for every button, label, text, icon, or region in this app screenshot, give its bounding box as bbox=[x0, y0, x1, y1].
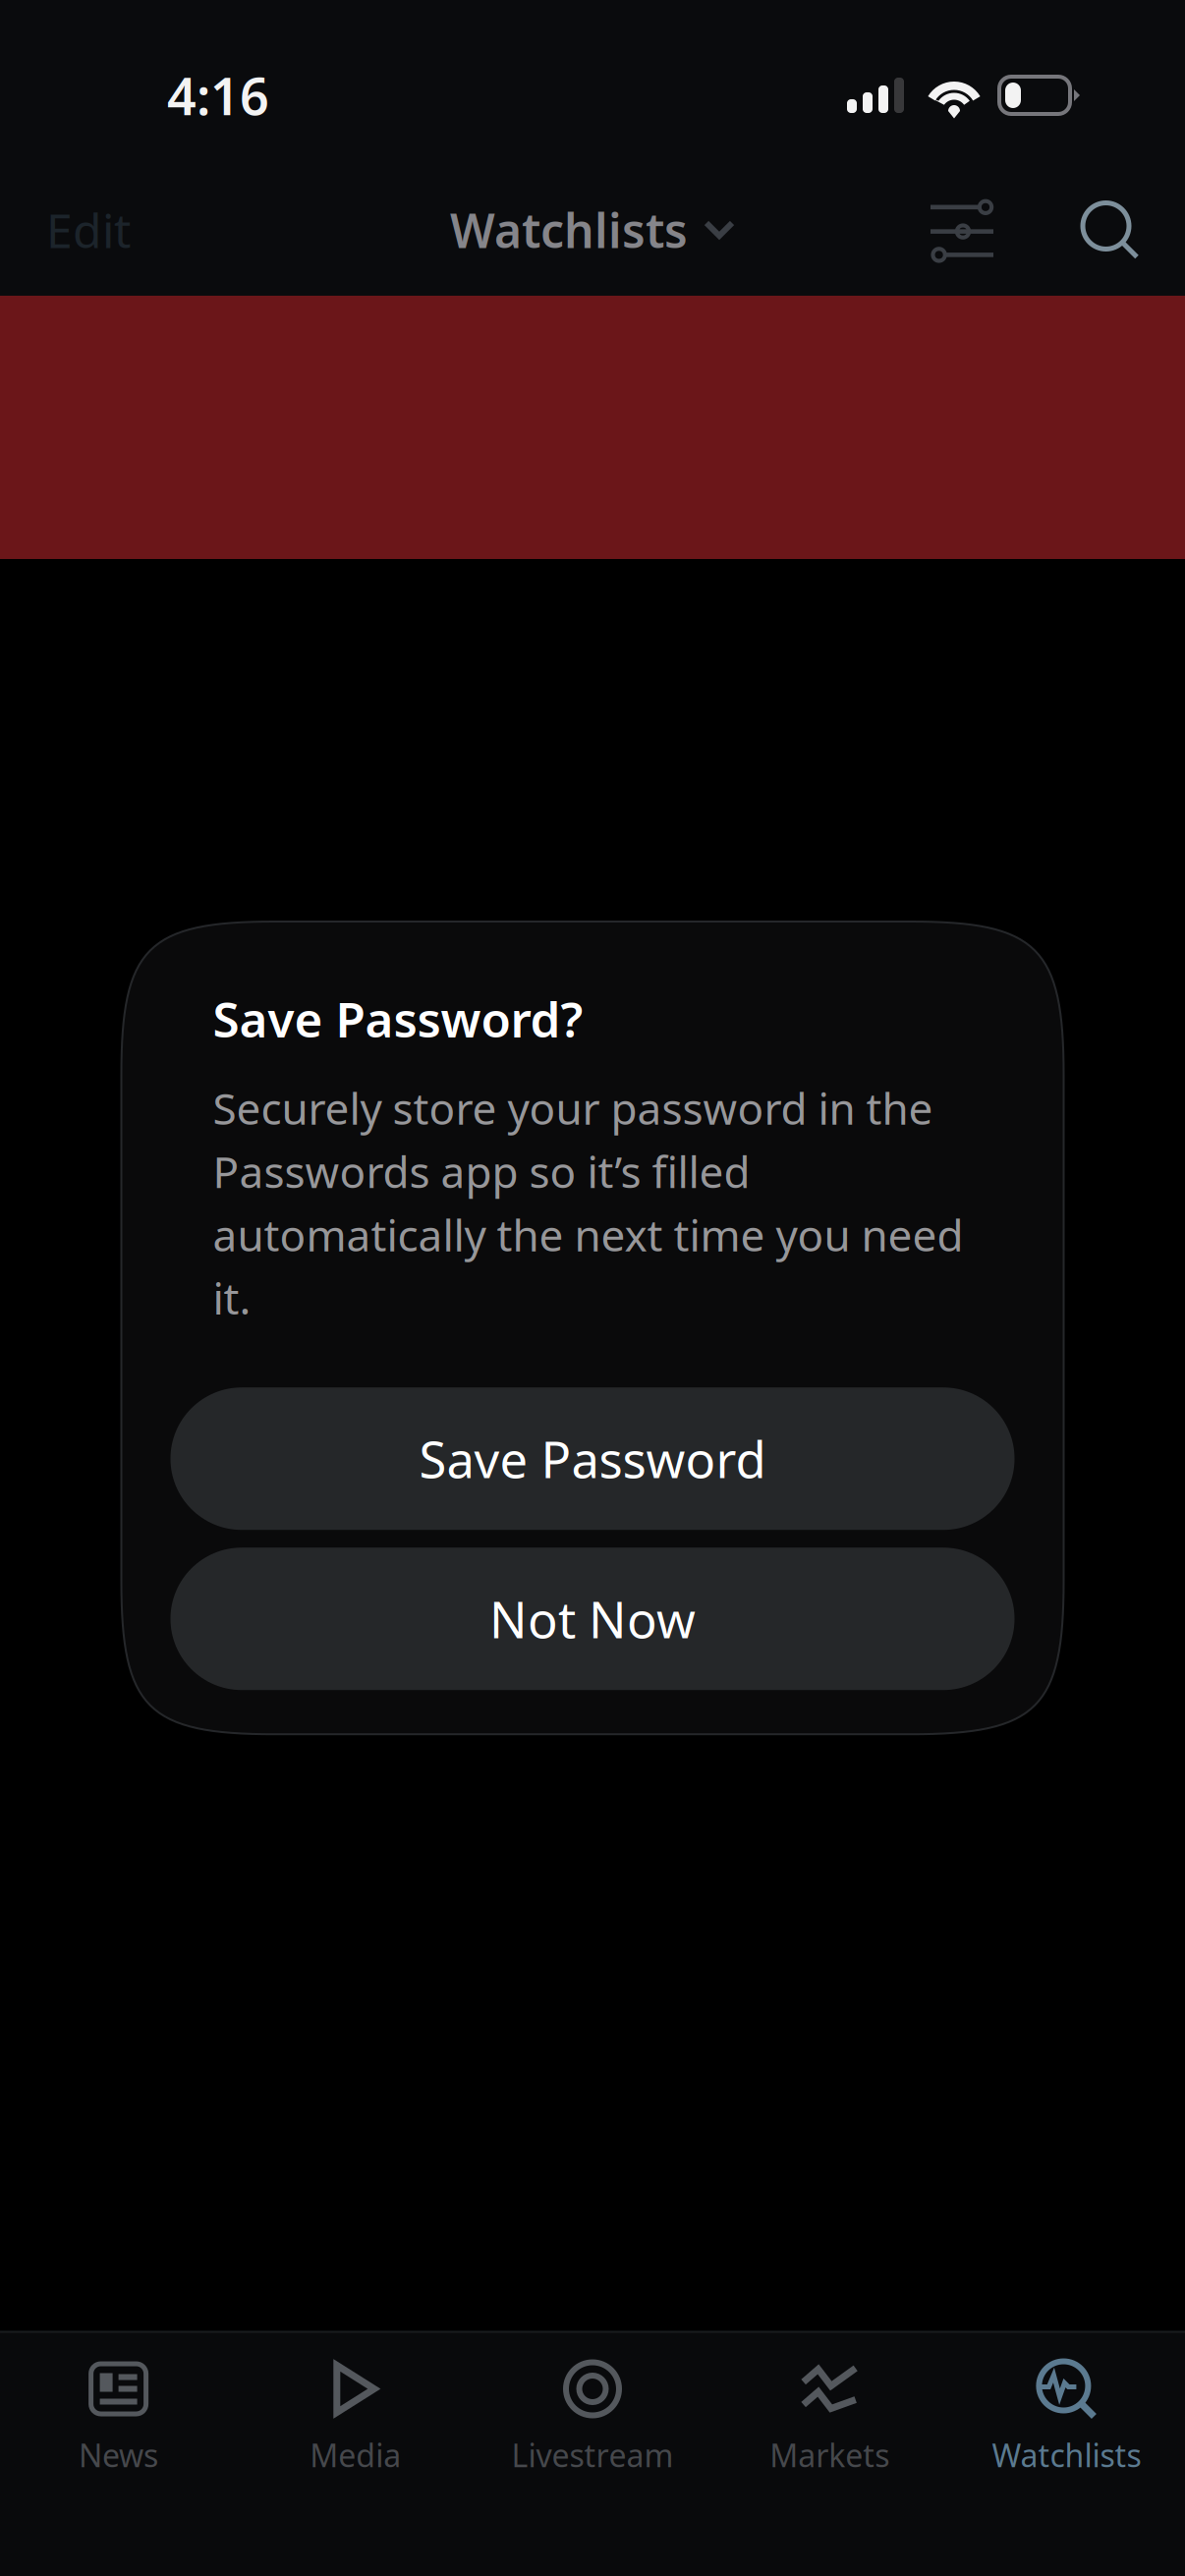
staticText: Not Now bbox=[489, 1586, 696, 1652]
button[interactable]: Watchlists bbox=[440, 189, 745, 271]
button[interactable]: Filter bbox=[911, 178, 1013, 282]
button[interactable]: Save Password bbox=[170, 1387, 1015, 1530]
staticText: 4:16 bbox=[167, 61, 269, 129]
button[interactable]: Search bbox=[1065, 189, 1155, 271]
staticText: Livestream bbox=[511, 2434, 674, 2476]
button[interactable]: News bbox=[0, 2333, 237, 2576]
staticText: Markets bbox=[770, 2434, 889, 2476]
staticText: Save Password? bbox=[213, 986, 583, 1051]
button[interactable]: Not Now bbox=[170, 1548, 1015, 1690]
staticText: Save Password bbox=[419, 1426, 766, 1492]
staticText: Watchlists bbox=[992, 2434, 1141, 2476]
button[interactable]: Watchlists bbox=[948, 2333, 1185, 2576]
button[interactable]: Livestream bbox=[474, 2333, 711, 2576]
staticText: Securely store your password in the Pass… bbox=[213, 1079, 963, 1327]
button[interactable]: Markets bbox=[711, 2333, 948, 2576]
staticText: Media bbox=[310, 2434, 401, 2476]
staticText: News bbox=[79, 2434, 158, 2476]
button[interactable]: Edit bbox=[28, 183, 148, 277]
button[interactable]: Media bbox=[237, 2333, 474, 2576]
staticText: Watchlists bbox=[450, 199, 688, 261]
staticText: Edit bbox=[46, 199, 131, 261]
